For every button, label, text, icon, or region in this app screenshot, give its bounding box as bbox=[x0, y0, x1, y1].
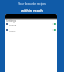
button[interactable]: Toggle Alerts bbox=[52, 29, 56, 31]
staticText: Alerts bbox=[9, 29, 16, 32]
button[interactable]: Alerts bbox=[5, 27, 57, 33]
button[interactable]: Toggle Sound bbox=[52, 23, 56, 25]
staticText: Settings bbox=[6, 19, 16, 23]
staticText: Sound bbox=[9, 23, 17, 26]
staticText: within reach bbox=[21, 8, 43, 13]
button[interactable]: Sound bbox=[5, 21, 57, 27]
staticText: Your favourite recipes bbox=[18, 2, 46, 6]
